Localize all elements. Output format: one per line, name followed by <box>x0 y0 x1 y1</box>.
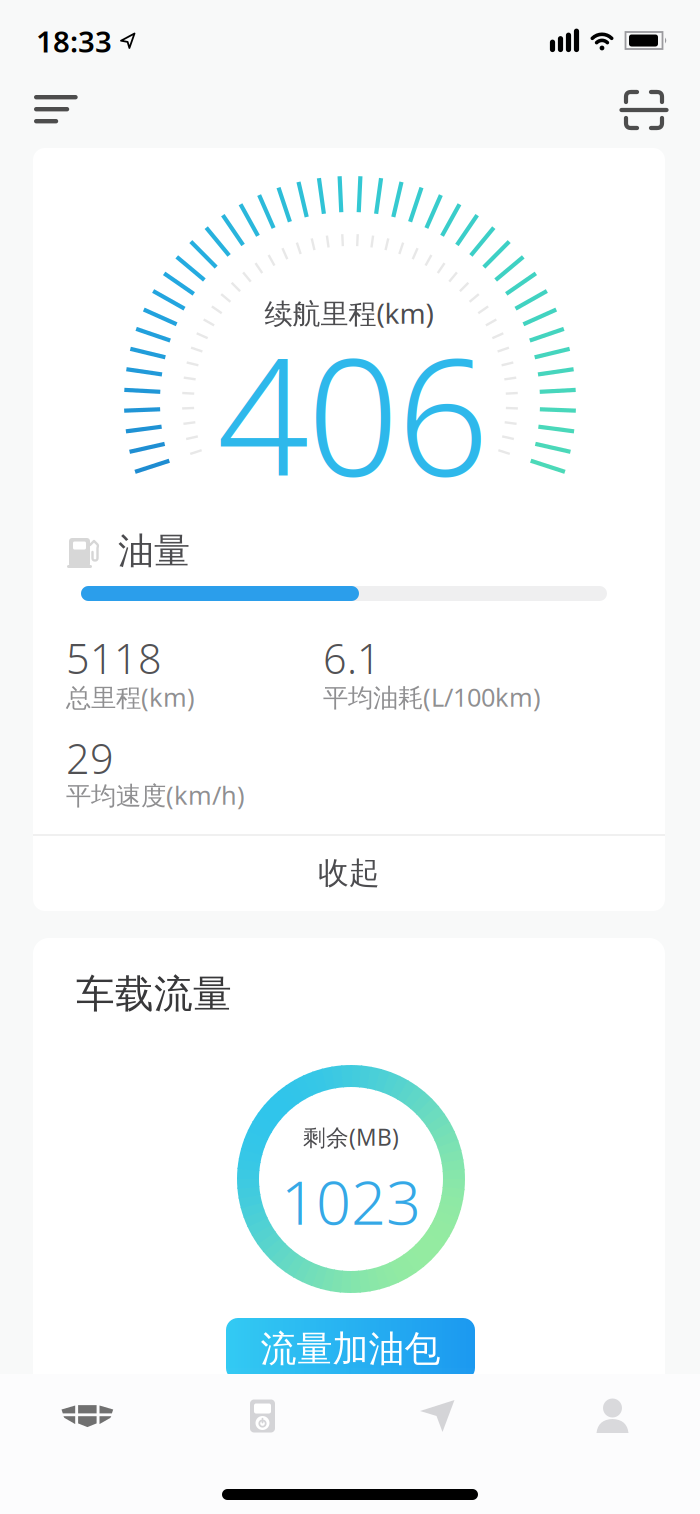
button[interactable]: 遥控 <box>175 1368 349 1464</box>
staticText: 剩余(MB) <box>303 1122 399 1152</box>
staticText: 18:33 <box>36 21 112 60</box>
staticText: 平均油耗(L/100km) <box>323 680 541 714</box>
button[interactable]: 车辆 <box>0 1368 174 1464</box>
staticText: 车载流量 <box>76 970 232 1018</box>
staticText: 29 <box>66 731 114 785</box>
button[interactable]: 收起 <box>33 836 665 910</box>
staticText: 5118 <box>66 631 162 685</box>
staticText: 油量 <box>118 529 190 573</box>
staticText: 总里程(km) <box>66 680 195 714</box>
button[interactable]: 我的 <box>525 1368 699 1464</box>
staticText: 406 <box>217 306 489 520</box>
button[interactable]: 流量加油包 <box>226 1318 475 1380</box>
button[interactable]: Scan <box>609 80 679 140</box>
staticText: 平均速度(km/h) <box>66 778 245 812</box>
staticText: 流量加油包 <box>260 1327 440 1371</box>
staticText: 1023 <box>281 1160 421 1242</box>
button[interactable]: 导航 <box>350 1368 524 1464</box>
staticText: 续航里程(km) <box>264 294 433 332</box>
staticText: 6.1 <box>323 631 381 685</box>
button[interactable]: Menu <box>21 80 91 140</box>
staticText: 收起 <box>318 854 380 892</box>
